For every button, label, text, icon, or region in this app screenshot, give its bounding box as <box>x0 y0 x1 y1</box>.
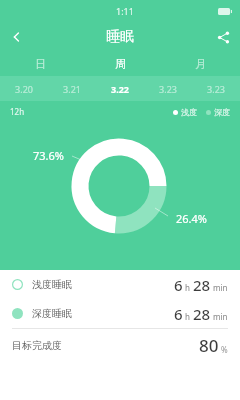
staticText: 目标完成度 <box>12 339 62 352</box>
staticText: 周 <box>115 57 126 71</box>
staticText: 3.20 <box>15 83 33 95</box>
button[interactable]: 目标完成度 <box>0 329 240 361</box>
button[interactable]: 3.22 <box>96 76 144 101</box>
staticText: 日 <box>35 57 46 71</box>
staticText: 3.22 <box>111 83 129 95</box>
staticText: 80 <box>199 334 219 357</box>
staticText: 1:11 <box>116 5 134 17</box>
button[interactable]: 日 <box>0 52 80 76</box>
staticText: 26.4% <box>176 211 207 226</box>
button[interactable]: 3.23 <box>192 76 240 101</box>
staticText: 6 <box>174 275 183 295</box>
staticText: 73.6% <box>33 148 64 163</box>
staticText: 浅度睡眠 <box>32 278 72 291</box>
staticText: 深度 <box>214 107 230 117</box>
button[interactable]: Back <box>0 22 34 52</box>
staticText: h <box>185 282 190 293</box>
staticText: 睡眠 <box>106 28 134 46</box>
staticText: 6 <box>174 304 183 324</box>
button[interactable]: Share <box>206 22 240 52</box>
staticText: 月 <box>195 57 206 71</box>
button[interactable]: 周 <box>80 52 160 76</box>
staticText: 3.23 <box>159 83 177 95</box>
staticText: 12h <box>10 106 25 117</box>
button[interactable]: 3.21 <box>48 76 96 101</box>
button[interactable]: 深度睡眠 <box>0 299 240 328</box>
button[interactable]: 浅度睡眠 <box>0 270 240 299</box>
staticText: 深度睡眠 <box>32 307 72 320</box>
button[interactable]: 月 <box>160 52 240 76</box>
staticText: min <box>213 282 228 293</box>
staticText: 3.23 <box>207 83 225 95</box>
staticText: 28 <box>193 304 211 324</box>
staticText: 浅度 <box>181 107 197 117</box>
button[interactable]: 3.20 <box>0 76 48 101</box>
staticText: h <box>185 311 190 322</box>
staticText: 28 <box>193 275 211 295</box>
button[interactable]: 3.23 <box>144 76 192 101</box>
staticText: min <box>213 311 228 322</box>
staticText: % <box>221 344 228 355</box>
staticText: 3.21 <box>63 83 81 95</box>
